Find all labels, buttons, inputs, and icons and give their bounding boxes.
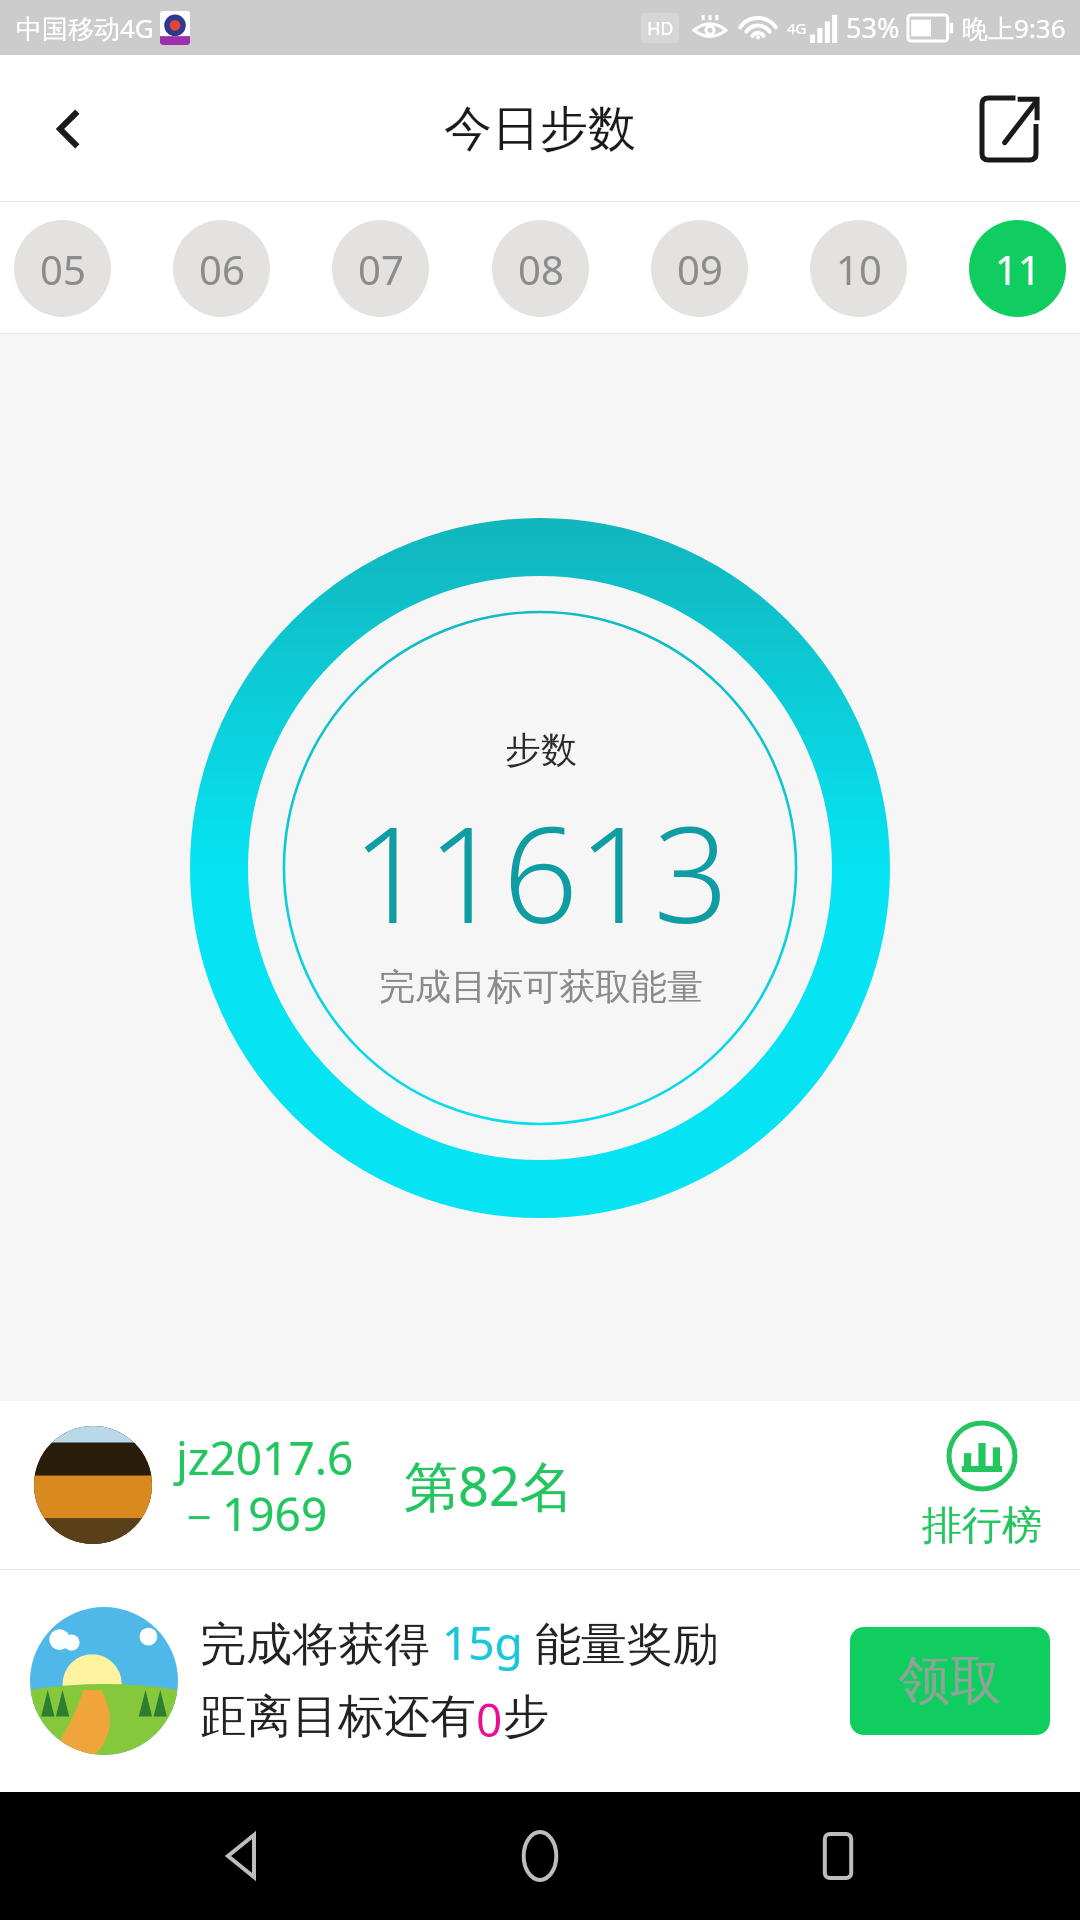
staticText: 第82名 — [404, 1448, 574, 1522]
staticText: 领取 — [898, 1648, 1002, 1714]
button[interactable]: Back — [28, 89, 108, 169]
staticText: 步 — [503, 1688, 549, 1746]
button[interactable]: 11 — [969, 220, 1066, 317]
staticText: 11 — [995, 242, 1041, 296]
button[interactable]: 领取 — [850, 1627, 1050, 1735]
staticText: 中国移动4G — [16, 10, 154, 46]
button[interactable]: jz2017.6－1969 — [0, 1401, 1080, 1569]
staticText: 05 — [40, 242, 86, 296]
button[interactable]: Back — [188, 1801, 298, 1911]
button[interactable]: Home — [485, 1801, 595, 1911]
staticText: 15g — [442, 1611, 523, 1674]
button[interactable]: 09 — [651, 220, 748, 317]
button[interactable]: 10 — [810, 220, 907, 317]
button[interactable]: Share — [966, 86, 1052, 172]
staticText: jz2017.6－1969 — [176, 1426, 386, 1545]
staticText: 08 — [518, 242, 564, 296]
staticText: 完成目标可获取能量 — [379, 964, 703, 1009]
staticText: 能量奖励 — [523, 1611, 719, 1674]
staticText: 排行榜 — [922, 1500, 1042, 1550]
staticText: 距离目标还有 — [200, 1688, 476, 1746]
staticText: 今日步数 — [444, 99, 636, 159]
staticText: 完成将获得 — [200, 1611, 442, 1674]
button[interactable]: 05 — [14, 220, 111, 317]
button[interactable]: 06 — [173, 220, 270, 317]
staticText: 06 — [199, 242, 245, 296]
button[interactable]: 08 — [492, 220, 589, 317]
staticText: 53% — [846, 9, 900, 46]
button[interactable]: 07 — [332, 220, 429, 317]
staticText: 10 — [836, 242, 882, 296]
button[interactable]: 排行榜 — [918, 1416, 1046, 1554]
staticText: 07 — [358, 242, 404, 296]
staticText: 晚上9:36 — [962, 10, 1066, 46]
button[interactable]: Recent apps — [783, 1801, 893, 1911]
staticText: HD — [647, 16, 674, 41]
staticText: 09 — [677, 242, 723, 296]
staticText: 11613 — [352, 782, 729, 962]
staticText: 4G — [787, 18, 807, 38]
staticText: 0 — [476, 1688, 503, 1751]
staticText: 步数 — [505, 727, 577, 772]
